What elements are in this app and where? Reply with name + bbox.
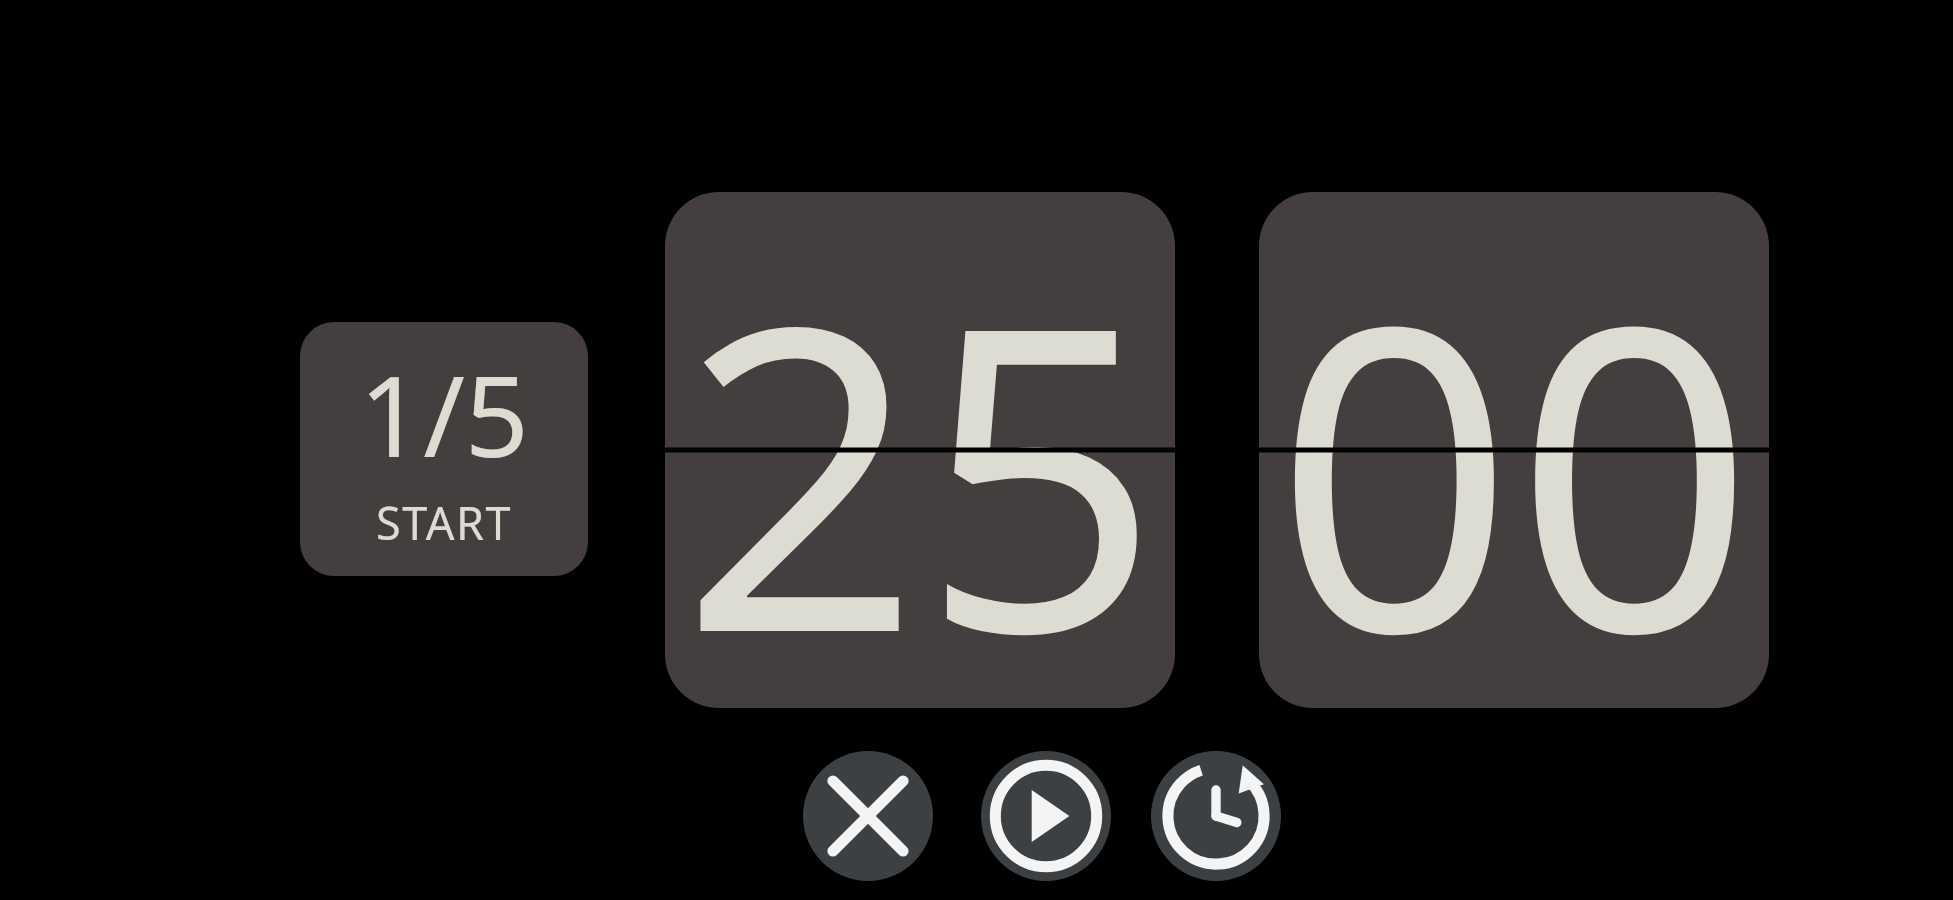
- button[interactable]: 1/5: [300, 322, 588, 576]
- button[interactable]: Reset: [1151, 751, 1281, 881]
- staticText: START: [376, 492, 512, 553]
- staticText: 1/5: [359, 337, 529, 490]
- button[interactable]: Start: [981, 751, 1111, 881]
- button[interactable]: 25: [665, 192, 1175, 708]
- button[interactable]: 00: [1259, 192, 1769, 708]
- staticText: 25: [680, 192, 1161, 698]
- button[interactable]: Cancel: [803, 751, 933, 881]
- staticText: 00: [1274, 192, 1755, 698]
